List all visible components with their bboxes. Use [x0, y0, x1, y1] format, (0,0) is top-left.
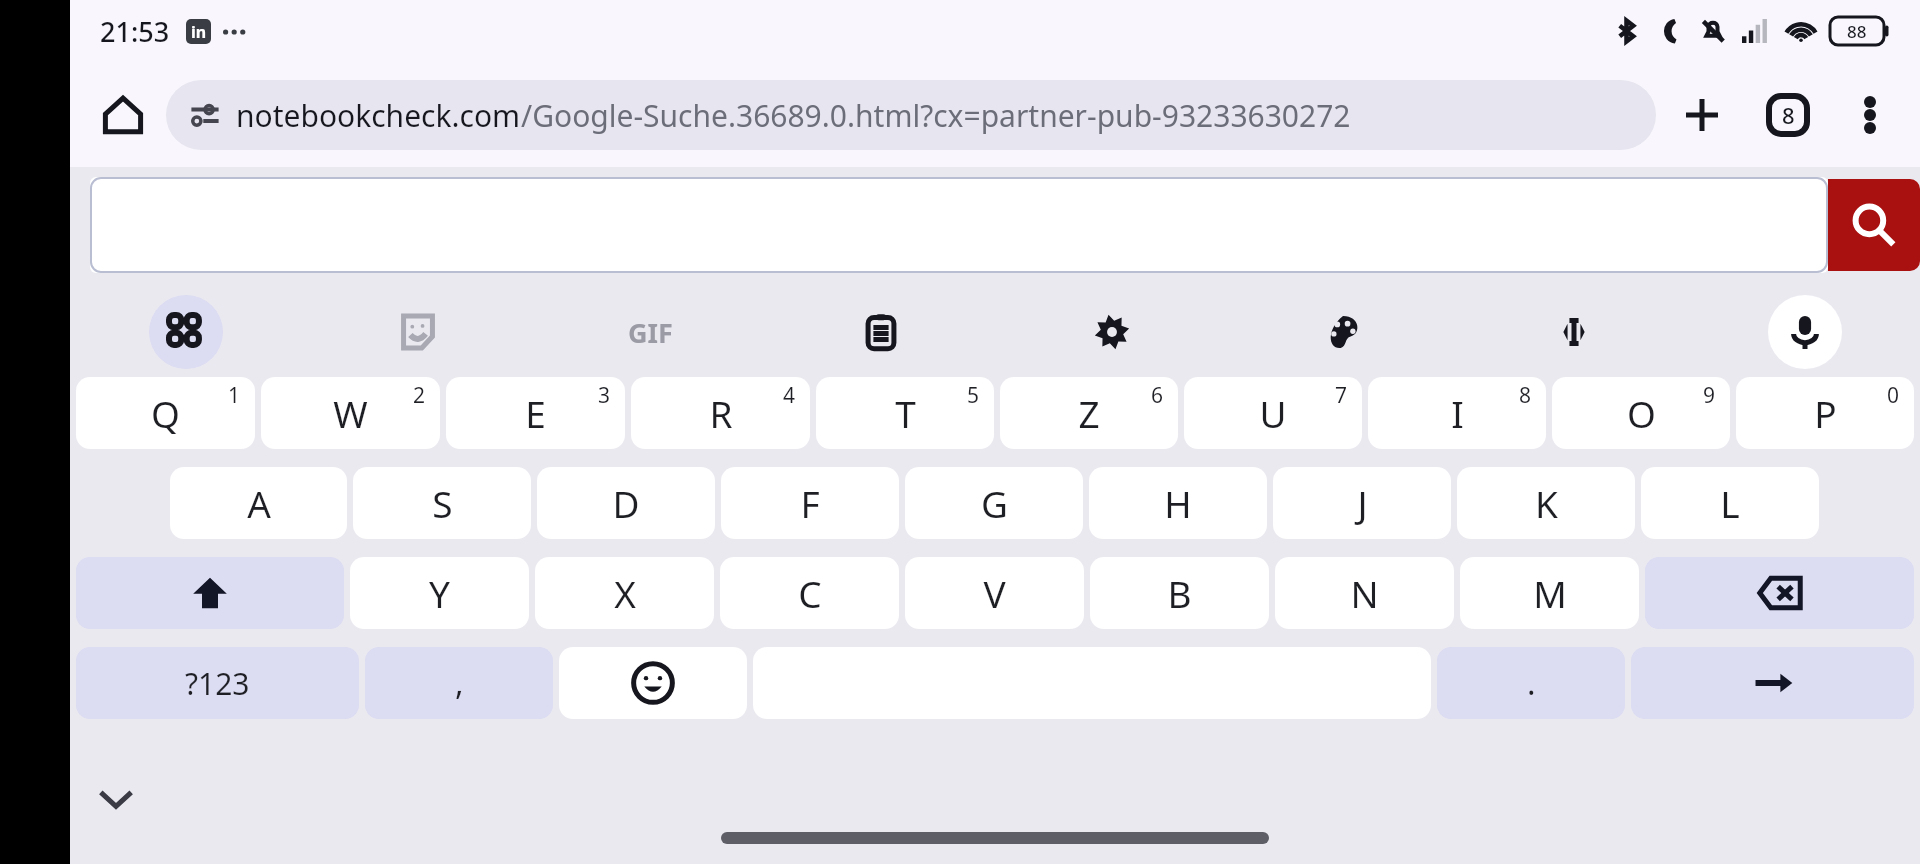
button[interactable]: V: [905, 557, 1084, 629]
staticText: E: [525, 388, 546, 438]
button[interactable]: S: [353, 467, 531, 539]
staticText: ?123: [185, 663, 250, 704]
button[interactable]: Search: [1828, 179, 1920, 271]
staticText: S: [432, 478, 453, 528]
staticText: C: [798, 568, 822, 618]
staticText: Q: [151, 388, 180, 438]
button[interactable]: U: [1184, 377, 1362, 449]
button[interactable]: Themes: [1306, 295, 1380, 369]
staticText: 0: [1887, 381, 1900, 410]
staticText: 3: [598, 381, 611, 410]
staticText: 2: [413, 381, 426, 410]
button[interactable]: New tab: [1666, 79, 1738, 151]
staticText: K: [1535, 478, 1558, 528]
staticText: P: [1814, 388, 1837, 438]
staticText: 8: [1782, 100, 1795, 130]
staticText: GIF: [628, 314, 673, 351]
staticText: T: [895, 388, 916, 438]
button[interactable]: Comma: [365, 647, 553, 719]
staticText: 21:53: [100, 13, 170, 50]
staticText: 7: [1335, 381, 1348, 410]
staticText: J: [1357, 478, 1368, 528]
button[interactable]: L: [1641, 467, 1819, 539]
button[interactable]: W: [261, 377, 440, 449]
button[interactable]: R: [631, 377, 810, 449]
button[interactable]: Hide keyboard: [78, 760, 154, 836]
button[interactable]: C: [720, 557, 899, 629]
staticText: O: [1627, 388, 1656, 438]
staticText: F: [800, 478, 820, 528]
button[interactable]: O: [1552, 377, 1730, 449]
button[interactable]: Backspace: [1645, 557, 1914, 629]
button[interactable]: Y: [350, 557, 529, 629]
button[interactable]: Tabs: 8: [1752, 79, 1824, 151]
button[interactable]: E: [446, 377, 625, 449]
button[interactable]: Text editing: [1537, 295, 1611, 369]
staticText: W: [333, 388, 368, 438]
button[interactable]: Period: [1437, 647, 1625, 719]
button[interactable]: Clipboard: [844, 295, 918, 369]
staticText: U: [1259, 388, 1287, 438]
button[interactable]: GIF: [613, 295, 687, 369]
staticText: L: [1720, 478, 1740, 528]
button[interactable]: P: [1736, 377, 1914, 449]
button[interactable]: Keyboard modes: [149, 295, 223, 369]
staticText: I: [1451, 388, 1464, 438]
staticText: 1: [228, 381, 241, 410]
staticText: 4: [783, 381, 796, 410]
button[interactable]: [90, 177, 1828, 273]
button[interactable]: notebookcheck.com: [166, 80, 1656, 150]
button[interactable]: A: [170, 467, 347, 539]
button[interactable]: D: [537, 467, 715, 539]
button[interactable]: Voice input: [1768, 295, 1842, 369]
button[interactable]: Home: [84, 76, 162, 154]
button[interactable]: Z: [1000, 377, 1178, 449]
staticText: R: [709, 388, 733, 438]
staticText: .: [1527, 661, 1536, 705]
button[interactable]: J: [1273, 467, 1451, 539]
button[interactable]: B: [1090, 557, 1269, 629]
staticText: A: [247, 478, 271, 528]
staticText: Z: [1078, 388, 1100, 438]
button[interactable]: Emoji: [559, 647, 747, 719]
staticText: /Google-Suche.36689.0.html?cx=partner-pu…: [521, 95, 1351, 136]
staticText: G: [981, 478, 1008, 528]
button[interactable]: M: [1460, 557, 1639, 629]
button[interactable]: T: [816, 377, 994, 449]
staticText: 5: [967, 381, 980, 410]
staticText: D: [612, 478, 640, 528]
button[interactable]: Symbols: [76, 647, 359, 719]
button[interactable]: N: [1275, 557, 1454, 629]
button[interactable]: Shift: [76, 557, 344, 629]
staticText: H: [1164, 478, 1192, 528]
staticText: 8: [1519, 381, 1532, 410]
staticText: N: [1350, 568, 1379, 618]
staticText: 9: [1703, 381, 1716, 410]
staticText: M: [1533, 568, 1567, 618]
button[interactable]: K: [1457, 467, 1635, 539]
button[interactable]: X: [535, 557, 714, 629]
staticText: notebookcheck.com: [236, 95, 521, 136]
staticText: ,: [455, 661, 464, 705]
button[interactable]: G: [905, 467, 1083, 539]
staticText: 88: [1847, 20, 1867, 43]
button[interactable]: Settings: [1075, 295, 1149, 369]
staticText: in: [191, 21, 207, 43]
button[interactable]: Q: [76, 377, 255, 449]
staticText: B: [1167, 568, 1192, 618]
staticText: Y: [429, 568, 450, 618]
button[interactable]: H: [1089, 467, 1267, 539]
staticText: X: [614, 568, 636, 618]
button[interactable]: Stickers: [381, 295, 455, 369]
button[interactable]: Enter: [1631, 647, 1914, 719]
staticText: V: [983, 568, 1006, 618]
button[interactable]: F: [721, 467, 899, 539]
staticText: 6: [1151, 381, 1164, 410]
button[interactable]: More options: [1834, 79, 1906, 151]
button[interactable]: I: [1368, 377, 1546, 449]
